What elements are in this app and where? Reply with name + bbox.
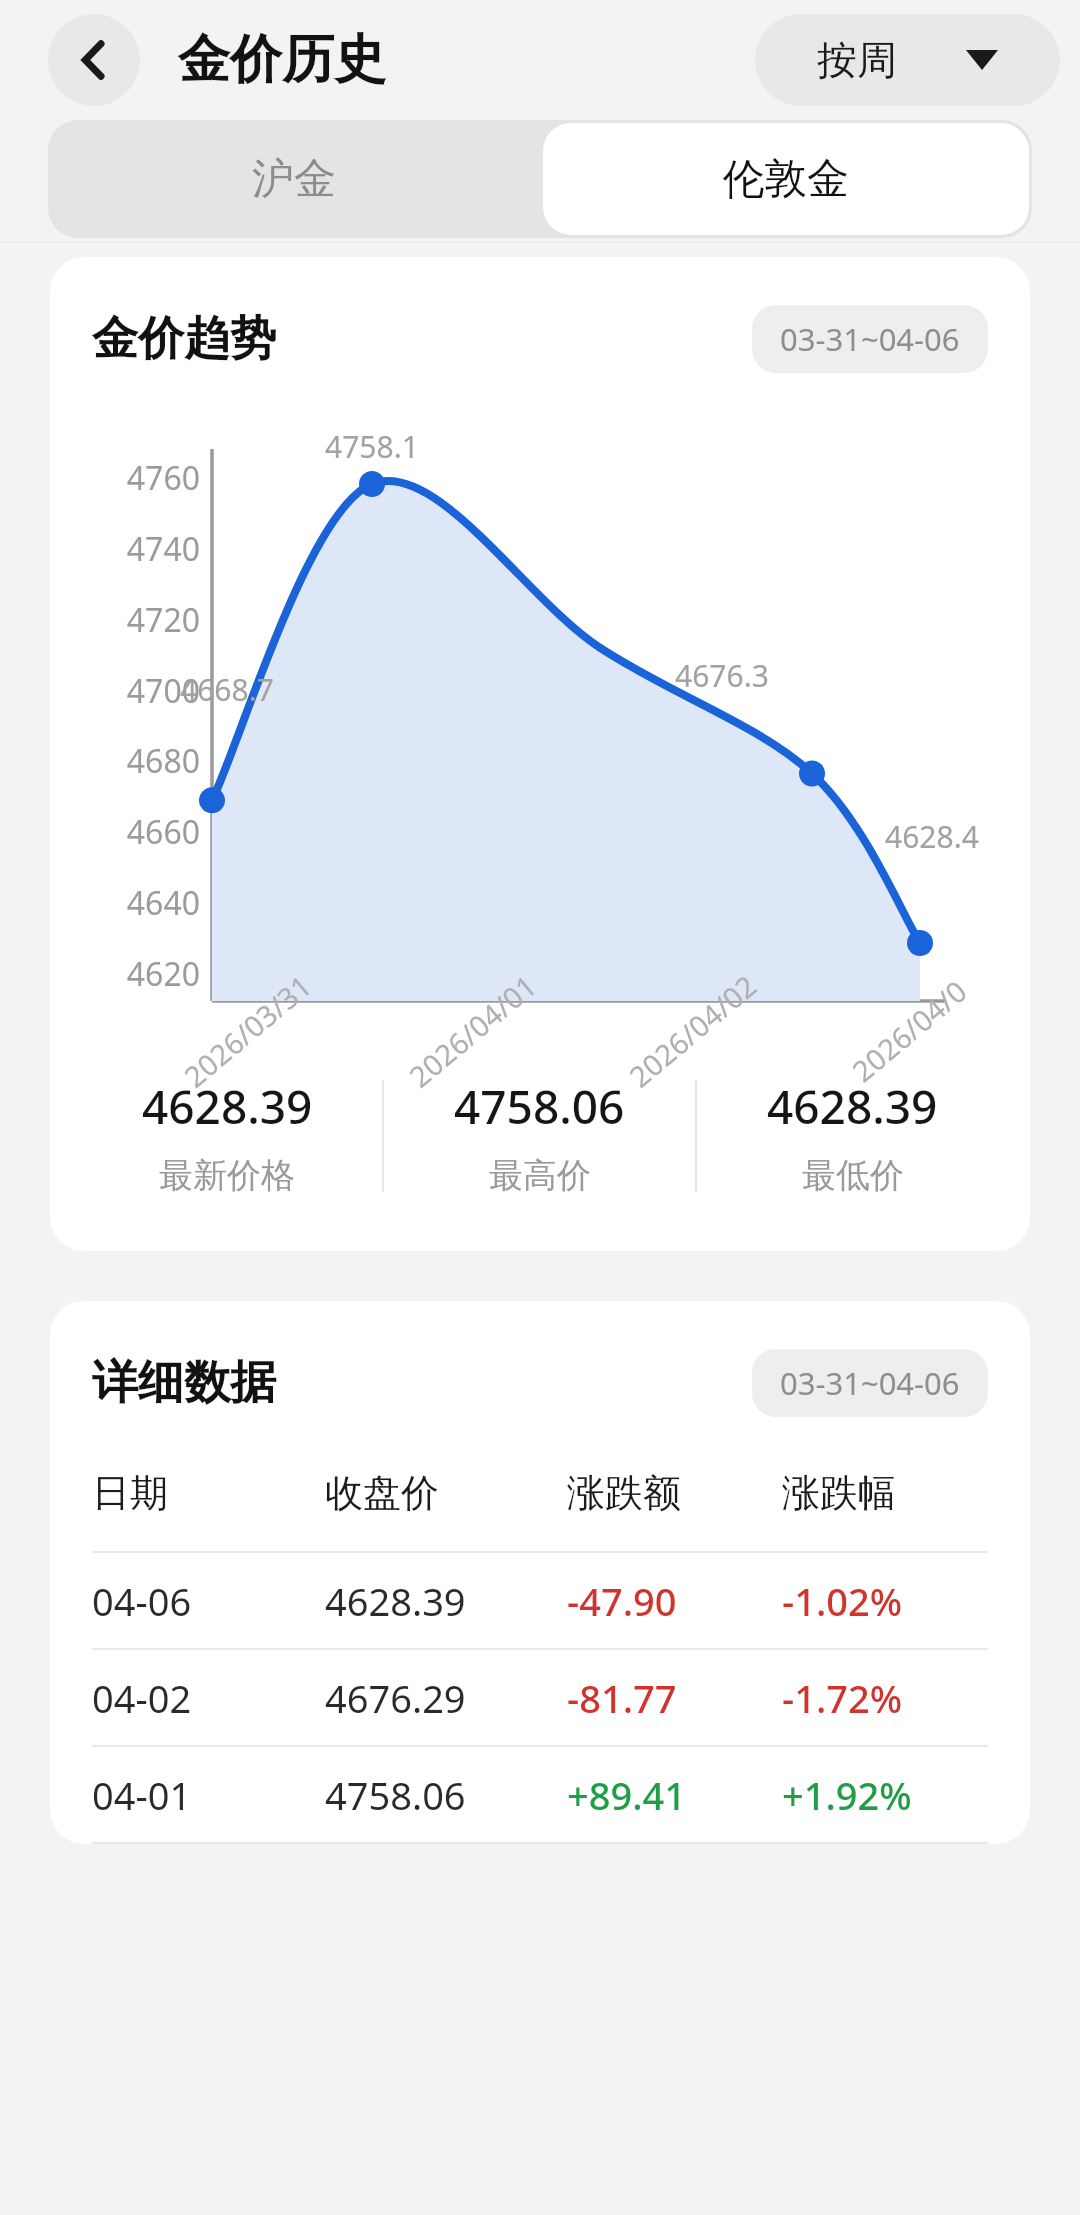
button[interactable]: 伦敦金 — [543, 123, 1029, 235]
staticText: 金价历史 — [178, 27, 386, 93]
staticText: 4700 — [74, 669, 200, 713]
staticText: 涨跌额 — [567, 1469, 681, 1517]
staticText: 4760 — [74, 456, 200, 500]
staticText: 4660 — [74, 810, 200, 854]
button[interactable]: 沪金 — [48, 120, 540, 238]
staticText: 最新价格 — [159, 1154, 295, 1197]
staticText: 4628.39 — [142, 1075, 313, 1138]
button[interactable]: 按周 — [755, 14, 1060, 106]
staticText: -81.77 — [567, 1672, 677, 1724]
staticText: 最高价 — [489, 1154, 591, 1197]
staticText: 4668.7 — [180, 669, 274, 710]
staticText: -1.72% — [782, 1672, 903, 1724]
staticText: 日期 — [92, 1469, 168, 1517]
staticText: 4758.06 — [325, 1769, 466, 1821]
staticText: 4640 — [74, 881, 200, 925]
staticText: 04-06 — [92, 1575, 192, 1627]
staticText: 4676.29 — [325, 1672, 466, 1724]
staticText: +89.41 — [567, 1769, 687, 1821]
staticText: -1.02% — [782, 1575, 903, 1627]
button[interactable]: 04-01 — [50, 1747, 1030, 1842]
staticText: 03-31~04-06 — [780, 318, 960, 360]
staticText: 4628.39 — [767, 1075, 938, 1138]
staticText: 2026/04/02 — [621, 966, 764, 1095]
staticText: 伦敦金 — [723, 153, 849, 206]
staticText: 沪金 — [252, 153, 336, 206]
staticText: 详细数据 — [92, 1354, 276, 1412]
staticText: 2026/04/01 — [401, 966, 544, 1095]
staticText: 2026/04/0 — [844, 971, 974, 1090]
staticText: 04-02 — [92, 1672, 192, 1724]
button[interactable]: 04-06 — [50, 1553, 1030, 1648]
staticText: -47.90 — [567, 1575, 677, 1627]
staticText: 最低价 — [802, 1154, 904, 1197]
button[interactable]: 04-02 — [50, 1650, 1030, 1745]
staticText: 04-01 — [92, 1769, 192, 1821]
staticText: 4676.3 — [675, 655, 769, 696]
staticText: +1.92% — [782, 1769, 912, 1821]
staticText: 03-31~04-06 — [780, 1362, 960, 1404]
staticText: 4758.1 — [325, 426, 419, 467]
button[interactable]: Back — [48, 14, 140, 106]
staticText: 4628.39 — [325, 1575, 466, 1627]
staticText: 金价趋势 — [92, 310, 276, 368]
staticText: 按周 — [817, 35, 897, 85]
staticText: 收盘价 — [325, 1469, 439, 1517]
staticText: 4620 — [74, 952, 200, 996]
staticText: 4720 — [74, 598, 200, 642]
staticText: 涨跌幅 — [782, 1469, 896, 1517]
staticText: 4758.06 — [454, 1075, 625, 1138]
staticText: 4740 — [74, 527, 200, 571]
staticText: 4628.4 — [885, 816, 979, 857]
staticText: 2026/03/31 — [176, 966, 319, 1095]
staticText: 4680 — [74, 739, 200, 783]
